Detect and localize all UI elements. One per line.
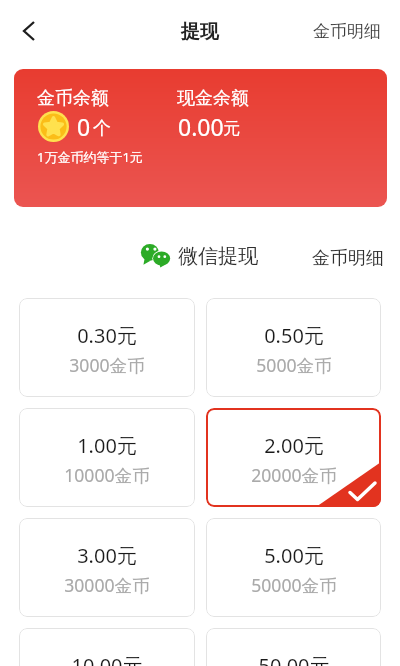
button[interactable]: 金币余额 — [14, 69, 387, 207]
button[interactable]: 2.00元 — [206, 408, 381, 507]
button[interactable]: 金币明细 — [313, 3, 400, 59]
staticText: 10000金币 — [64, 463, 150, 487]
staticText: 20000金币 — [251, 463, 337, 487]
button[interactable]: 0.50元 — [206, 298, 381, 397]
staticText: 1.00元 — [77, 432, 137, 459]
button[interactable]: 10.00元 — [19, 628, 195, 666]
button[interactable]: 3.00元 — [19, 518, 195, 617]
button[interactable]: 1.00元 — [19, 408, 195, 507]
staticText: 个 — [93, 117, 111, 140]
staticText: 30000金币 — [64, 573, 150, 597]
button[interactable]: 5.00元 — [206, 518, 381, 617]
staticText: 3.00元 — [77, 542, 137, 569]
staticText: 金币明细 — [312, 247, 384, 270]
button[interactable]: 金币明细 — [312, 243, 384, 273]
button[interactable]: Back — [6, 3, 52, 59]
staticText: 50.00元 — [258, 652, 330, 666]
staticText: 提现 — [181, 20, 219, 44]
staticText: 10.00元 — [71, 652, 143, 666]
staticText: 3000金币 — [69, 353, 145, 377]
staticText: 现金余额 — [177, 87, 249, 110]
staticText: 元 — [223, 118, 240, 139]
staticText: 1万金币约等于1元 — [37, 148, 143, 166]
staticText: 0.00 — [178, 111, 224, 142]
button[interactable]: 微信提现 — [140, 241, 258, 271]
staticText: 0.30元 — [77, 322, 137, 349]
button[interactable]: 0.30元 — [19, 298, 195, 397]
staticText: 微信提现 — [178, 244, 258, 269]
staticText: 金币余额 — [37, 87, 109, 110]
staticText: 5000金币 — [256, 353, 332, 377]
button[interactable]: 50.00元 — [206, 628, 381, 666]
staticText: 2.00元 — [264, 432, 324, 459]
staticText: 0 — [77, 111, 91, 142]
staticText: 5.00元 — [264, 542, 324, 569]
staticText: 0.50元 — [264, 322, 324, 349]
staticText: 金币明细 — [313, 21, 381, 42]
staticText: 50000金币 — [251, 573, 337, 597]
